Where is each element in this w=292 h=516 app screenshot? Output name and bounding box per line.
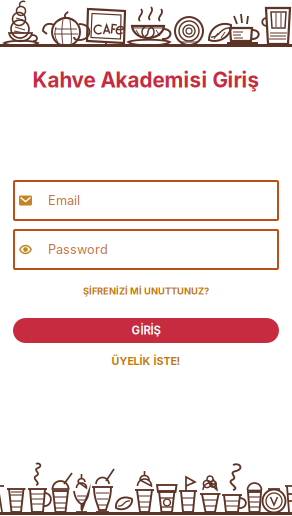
button[interactable]: ŞİFRENİZİ Mİ UNUTTUNUZ? — [13, 280, 279, 302]
button[interactable]: GİRİŞ — [13, 318, 279, 343]
staticText: Kahve Akademisi Giriş — [32, 67, 259, 92]
staticText: ÜYELİK İSTE! — [111, 354, 180, 367]
staticText: Password — [48, 242, 108, 257]
button[interactable]: ÜYELİK İSTE! — [13, 350, 279, 372]
staticText: ŞİFRENİZİ Mİ UNUTTUNUZ? — [83, 285, 209, 297]
staticText: Email — [48, 193, 80, 208]
staticText: GİRİŞ — [131, 324, 160, 337]
